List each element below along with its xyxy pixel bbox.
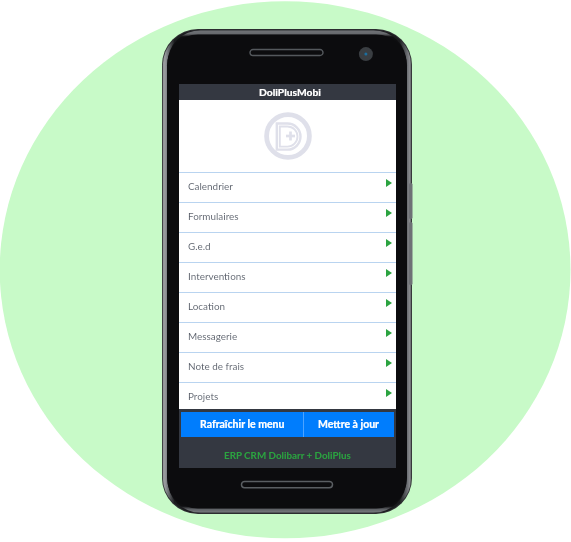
staticText: DoliPlusMobi bbox=[259, 86, 321, 98]
staticText: Projets bbox=[188, 390, 219, 402]
button[interactable]: Messagerie bbox=[179, 323, 396, 352]
staticText: Messagerie bbox=[188, 330, 238, 342]
staticText: Formulaires bbox=[188, 210, 239, 222]
staticText: Interventions bbox=[188, 270, 246, 282]
staticText: ERP CRM Dolibarr + DoliPlus bbox=[224, 449, 351, 461]
button[interactable]: Interventions bbox=[179, 263, 396, 292]
button[interactable]: Rafraîchir le menu bbox=[181, 412, 303, 437]
button[interactable]: Formulaires bbox=[179, 203, 396, 232]
staticText: Location bbox=[188, 300, 226, 312]
staticText: Mettre à jour bbox=[318, 418, 380, 431]
button[interactable]: Calendrier bbox=[179, 173, 396, 202]
staticText: Calendrier bbox=[188, 180, 233, 192]
button[interactable]: G.e.d bbox=[179, 233, 396, 262]
staticText: G.e.d bbox=[188, 240, 211, 252]
button[interactable]: Projets bbox=[179, 383, 396, 409]
button[interactable]: DoliPlusMobi bbox=[179, 84, 396, 100]
staticText: Note de frais bbox=[188, 360, 245, 372]
button[interactable]: Mettre à jour bbox=[304, 412, 394, 437]
staticText: Rafraîchir le menu bbox=[200, 418, 285, 431]
button[interactable]: Location bbox=[179, 293, 396, 322]
button[interactable]: Note de frais bbox=[179, 353, 396, 382]
